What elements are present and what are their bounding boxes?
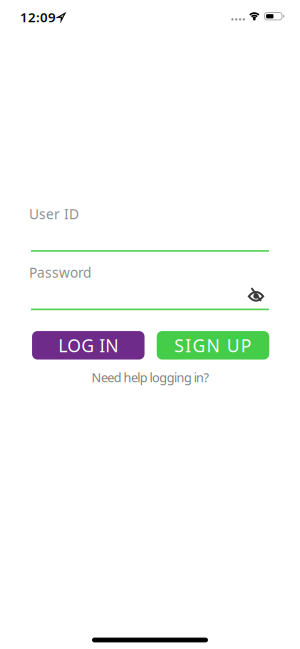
staticText: LOG IN [58, 333, 118, 357]
button[interactable]: Password [28, 265, 270, 311]
button[interactable]: User ID [28, 206, 270, 252]
staticText: Need help logging in? [91, 369, 208, 386]
staticText: User ID [29, 204, 79, 223]
staticText: SIGN UP [174, 333, 252, 357]
button[interactable]: Need help logging in? [91, 369, 208, 386]
staticText: Password [29, 263, 91, 282]
button[interactable]: Show password [241, 281, 271, 307]
staticText: 12:09 [20, 8, 56, 26]
button[interactable]: LOG IN [32, 331, 144, 360]
button[interactable]: SIGN UP [157, 331, 269, 360]
